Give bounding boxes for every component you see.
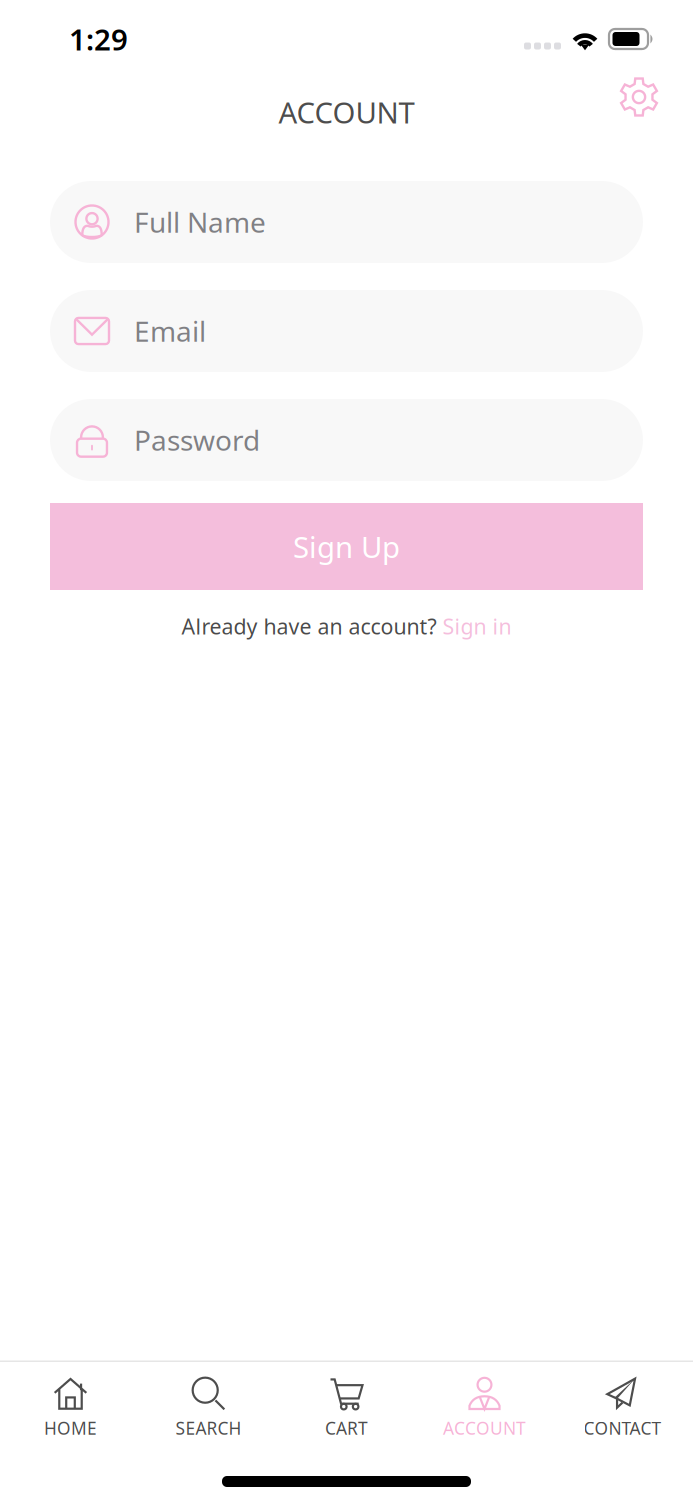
staticText: Password [134, 421, 260, 459]
staticText: 1:29 [69, 19, 128, 58]
staticText: CONTACT [583, 1416, 661, 1439]
button[interactable]: Sign Up [50, 503, 643, 590]
button[interactable]: Settings [611, 84, 667, 140]
button[interactable]: CART [277, 1370, 415, 1446]
staticText: Sign Up [293, 527, 400, 566]
staticText: HOME [44, 1416, 97, 1439]
button[interactable]: HOME [1, 1370, 139, 1446]
staticText: ACCOUNT [443, 1416, 526, 1439]
staticText: Full Name [134, 203, 266, 241]
staticText: SEARCH [175, 1416, 241, 1439]
button[interactable]: Sign in [442, 612, 511, 640]
button[interactable]: ACCOUNT [415, 1370, 553, 1446]
staticText: Sign in [442, 612, 511, 640]
staticText: Already have an account? [181, 612, 442, 640]
button[interactable]: CONTACT [553, 1370, 691, 1446]
staticText: Email [134, 312, 206, 350]
button[interactable]: SEARCH [139, 1370, 277, 1446]
staticText: CART [325, 1416, 368, 1439]
staticText: ACCOUNT [278, 92, 414, 131]
